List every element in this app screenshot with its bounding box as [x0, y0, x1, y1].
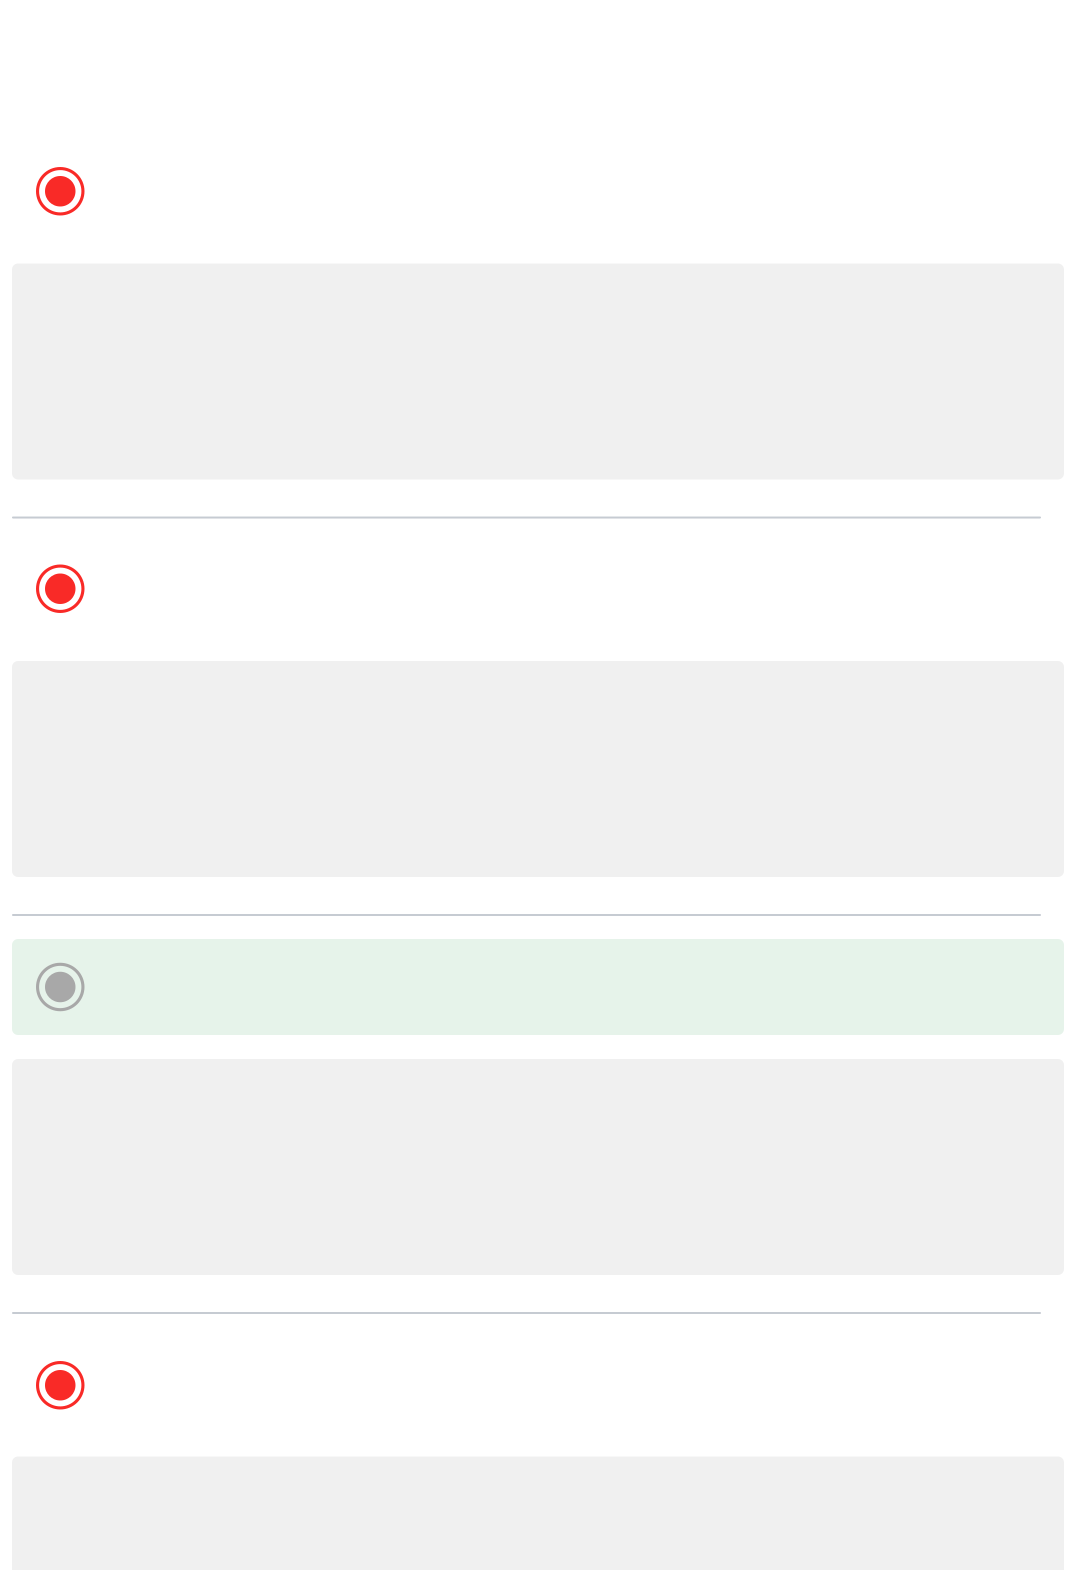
button[interactable]: Feed post, loading — [0, 0, 1076, 479]
button[interactable]: Feed post, loading — [0, 518, 1076, 877]
button[interactable]: Feed post, loading — [0, 1314, 1076, 1570]
button[interactable]: Selected feed post, loading — [0, 916, 1076, 1275]
